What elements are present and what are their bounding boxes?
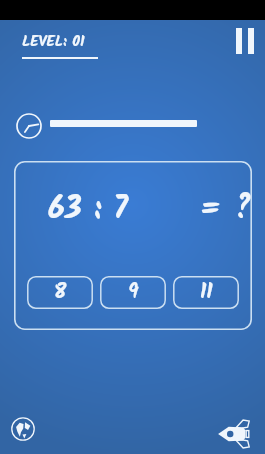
staticText: 9	[128, 276, 139, 309]
button[interactable]: Pause	[230, 26, 260, 56]
staticText: 11	[200, 276, 213, 309]
button[interactable]: Start	[214, 414, 254, 454]
button[interactable]: 9	[100, 276, 166, 309]
staticText: 63 : 7	[48, 185, 128, 234]
staticText: = ?	[200, 185, 252, 234]
button[interactable]: 11	[173, 276, 239, 309]
button[interactable]: Language	[9, 415, 37, 443]
staticText: LEVEL: 01	[22, 30, 85, 54]
button[interactable]: 8	[27, 276, 93, 309]
staticText: 8	[54, 276, 67, 309]
button[interactable]: LEVEL: 01	[22, 30, 98, 59]
